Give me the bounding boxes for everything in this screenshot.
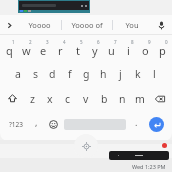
button[interactable]: a: [9, 61, 27, 86]
staticText: y: [92, 43, 98, 58]
button[interactable]: Emoji: [44, 111, 62, 137]
button[interactable]: ,: [28, 111, 44, 137]
button[interactable]: n: [113, 86, 131, 111]
button[interactable]: k: [129, 61, 146, 86]
staticText: Yoooo of: [71, 20, 103, 30]
button[interactable]: 8: [120, 36, 137, 61]
button[interactable]: Navigation: [74, 134, 98, 158]
staticText: e: [40, 43, 47, 58]
button[interactable]: l: [146, 61, 163, 86]
staticText: b: [101, 92, 108, 106]
staticText: g: [83, 67, 90, 81]
staticText: n: [119, 92, 126, 106]
button[interactable]: 6: [86, 36, 103, 61]
staticText: 4: [63, 39, 66, 45]
button[interactable]: 7: [103, 36, 120, 61]
staticText: Yoooo: [28, 20, 51, 30]
staticText: Wed 1:23 PM: [132, 163, 166, 170]
staticText: r: [58, 43, 63, 58]
button[interactable]: 0: [154, 36, 171, 61]
button[interactable]: 4: [52, 36, 69, 61]
staticText: i: [127, 43, 130, 58]
staticText: u: [108, 43, 115, 58]
button[interactable]: 2: [18, 36, 35, 61]
button[interactable]: Voice input: [150, 15, 172, 35]
staticText: k: [135, 67, 141, 81]
staticText: 8: [131, 39, 134, 45]
staticText: d: [49, 67, 56, 81]
button[interactable]: 1: [1, 36, 18, 61]
staticText: ?123: [9, 120, 23, 129]
button[interactable]: g: [78, 61, 95, 86]
staticText: a: [15, 67, 21, 81]
button[interactable]: 9: [137, 36, 154, 61]
button[interactable]: Expand suggestions: [0, 15, 18, 35]
staticText: t: [76, 43, 80, 58]
staticText: x: [47, 92, 53, 106]
staticText: .: [135, 116, 138, 128]
staticText: s: [33, 67, 39, 81]
staticText: c: [65, 92, 71, 106]
button[interactable]: x: [41, 86, 59, 111]
staticText: j: [119, 67, 122, 81]
staticText: w: [22, 43, 31, 58]
button[interactable]: j: [112, 61, 129, 86]
staticText: f: [68, 67, 72, 81]
staticText: 3: [46, 39, 49, 45]
button[interactable]: Enter: [149, 117, 164, 132]
staticText: 2: [29, 39, 32, 45]
staticText: p: [159, 43, 166, 58]
staticText: z: [30, 92, 35, 106]
staticText: v: [83, 92, 89, 106]
button[interactable]: m: [131, 86, 149, 111]
button[interactable]: b: [95, 86, 113, 111]
button[interactable]: s: [27, 61, 44, 86]
staticText: 5: [80, 39, 83, 45]
staticText: l: [153, 67, 156, 81]
button[interactable]: v: [77, 86, 95, 111]
staticText: h: [100, 67, 107, 81]
button[interactable]: Yoooo of: [62, 15, 112, 35]
staticText: o: [142, 43, 149, 58]
staticText: 9: [148, 39, 151, 45]
button[interactable]: 3: [35, 36, 52, 61]
staticText: You: [125, 20, 139, 30]
button[interactable]: .: [128, 111, 144, 137]
button[interactable]: c: [59, 86, 77, 111]
staticText: ,: [35, 116, 38, 128]
button[interactable]: d: [44, 61, 61, 86]
staticText: 1: [12, 39, 15, 45]
button[interactable]: You: [113, 15, 150, 35]
button[interactable]: z: [23, 86, 41, 111]
button[interactable]: 5: [69, 36, 86, 61]
button[interactable]: ?123: [3, 111, 28, 137]
button[interactable]: Yoooo: [18, 15, 61, 35]
staticText: q: [6, 43, 13, 58]
button[interactable]: Backspace: [149, 86, 170, 111]
button[interactable]: h: [95, 61, 112, 86]
staticText: m: [135, 92, 145, 106]
staticText: 7: [114, 39, 117, 45]
button[interactable]: f: [61, 61, 78, 86]
staticText: 6: [97, 39, 100, 45]
staticText: 0: [165, 39, 168, 45]
button[interactable]: Shift: [2, 86, 23, 111]
